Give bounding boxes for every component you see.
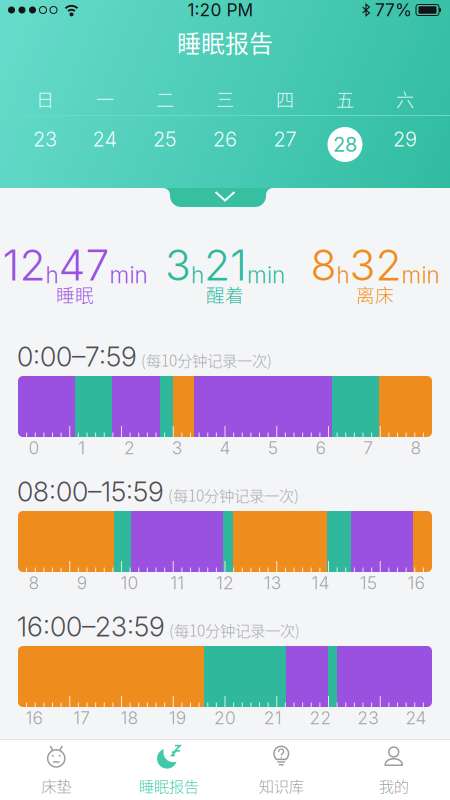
button[interactable]: 3	[150, 248, 300, 303]
staticText: h	[45, 261, 58, 289]
staticText: 9	[77, 572, 87, 593]
button[interactable]: 24	[75, 116, 135, 188]
staticText: 25	[153, 127, 177, 151]
staticText: 离床	[356, 280, 394, 307]
button[interactable]: 25	[135, 116, 195, 188]
staticText: 11	[170, 572, 184, 593]
staticText: 0	[28, 437, 39, 458]
staticText: 47	[58, 239, 109, 291]
staticText: 12	[2, 239, 45, 291]
staticText: 日	[36, 86, 54, 112]
staticText: 28	[333, 132, 357, 157]
staticText: min	[247, 261, 285, 289]
staticText: 29	[393, 127, 417, 151]
button[interactable]: 8	[300, 248, 450, 303]
staticText: 3	[165, 239, 191, 291]
staticText: 18	[120, 707, 138, 728]
staticText: 1:20 PM	[187, 0, 253, 20]
staticText: 0:00–7:59	[17, 341, 137, 373]
staticText: 床垫	[41, 774, 71, 797]
staticText: 一	[96, 86, 114, 112]
staticText: 7	[363, 437, 373, 458]
button[interactable]: 27	[255, 116, 315, 188]
staticText: 三	[216, 86, 234, 112]
staticText: 睡眠报告	[177, 25, 273, 59]
staticText: 21	[204, 239, 247, 291]
staticText: 8	[310, 239, 336, 291]
staticText: (每10分钟记录一次)	[141, 349, 272, 371]
staticText: 22	[310, 707, 332, 728]
staticText: 睡眠报告	[139, 774, 199, 797]
staticText: 24	[92, 127, 117, 151]
staticText: 睡眠	[56, 280, 94, 307]
staticText: 10	[120, 572, 138, 593]
staticText: 醒着	[206, 280, 244, 307]
staticText: 27	[273, 127, 296, 151]
button[interactable]: 睡眠报告	[0, 20, 450, 64]
button[interactable]: 26	[195, 116, 255, 188]
button[interactable]: 23	[15, 116, 75, 188]
staticText: 六	[396, 86, 414, 112]
staticText: 08:00–15:59	[17, 476, 164, 508]
staticText: 16	[408, 572, 425, 593]
staticText: (每10分钟记录一次)	[169, 619, 300, 641]
button[interactable]: 知识库	[225, 739, 337, 800]
staticText: 77%	[375, 0, 412, 20]
staticText: 23	[33, 127, 57, 151]
staticText: 3	[172, 437, 183, 458]
staticText: 14	[312, 572, 330, 593]
staticText: 23	[357, 707, 379, 728]
staticText: 6	[316, 437, 326, 458]
staticText: 二	[156, 86, 174, 112]
staticText: 32	[349, 239, 401, 291]
staticText: min	[109, 261, 147, 289]
staticText: 17	[73, 707, 90, 728]
staticText: 20	[214, 707, 236, 728]
staticText: 我的	[379, 774, 409, 797]
button[interactable]: 12	[0, 248, 150, 303]
staticText: 21	[264, 707, 282, 728]
staticText: 15	[360, 572, 377, 593]
staticText: (每10分钟记录一次)	[168, 484, 299, 506]
button[interactable]: 28	[315, 116, 375, 188]
staticText: 5	[268, 437, 278, 458]
staticText: 8	[411, 437, 422, 458]
staticText: 24	[406, 707, 427, 728]
staticText: 12	[216, 572, 234, 593]
button[interactable]: Collapse calendar	[170, 188, 280, 207]
staticText: 五	[336, 86, 354, 112]
staticText: 26	[213, 127, 237, 151]
staticText: 19	[169, 707, 186, 728]
button[interactable]: 我的	[337, 739, 450, 800]
button[interactable]: 29	[375, 116, 435, 188]
staticText: 四	[276, 86, 294, 112]
staticText: h	[191, 261, 204, 289]
staticText: 知识库	[259, 774, 304, 797]
staticText: 4	[219, 437, 230, 458]
staticText: 16	[25, 707, 42, 728]
staticText: 8	[28, 572, 39, 593]
button[interactable]: 睡眠报告	[112, 739, 225, 800]
staticText: 2	[124, 437, 135, 458]
staticText: h	[336, 261, 349, 289]
staticText: 13	[264, 572, 282, 593]
staticText: 16:00–23:59	[17, 611, 165, 643]
button[interactable]: 床垫	[0, 739, 112, 800]
staticText: 1	[78, 437, 85, 458]
staticText: min	[401, 261, 439, 289]
